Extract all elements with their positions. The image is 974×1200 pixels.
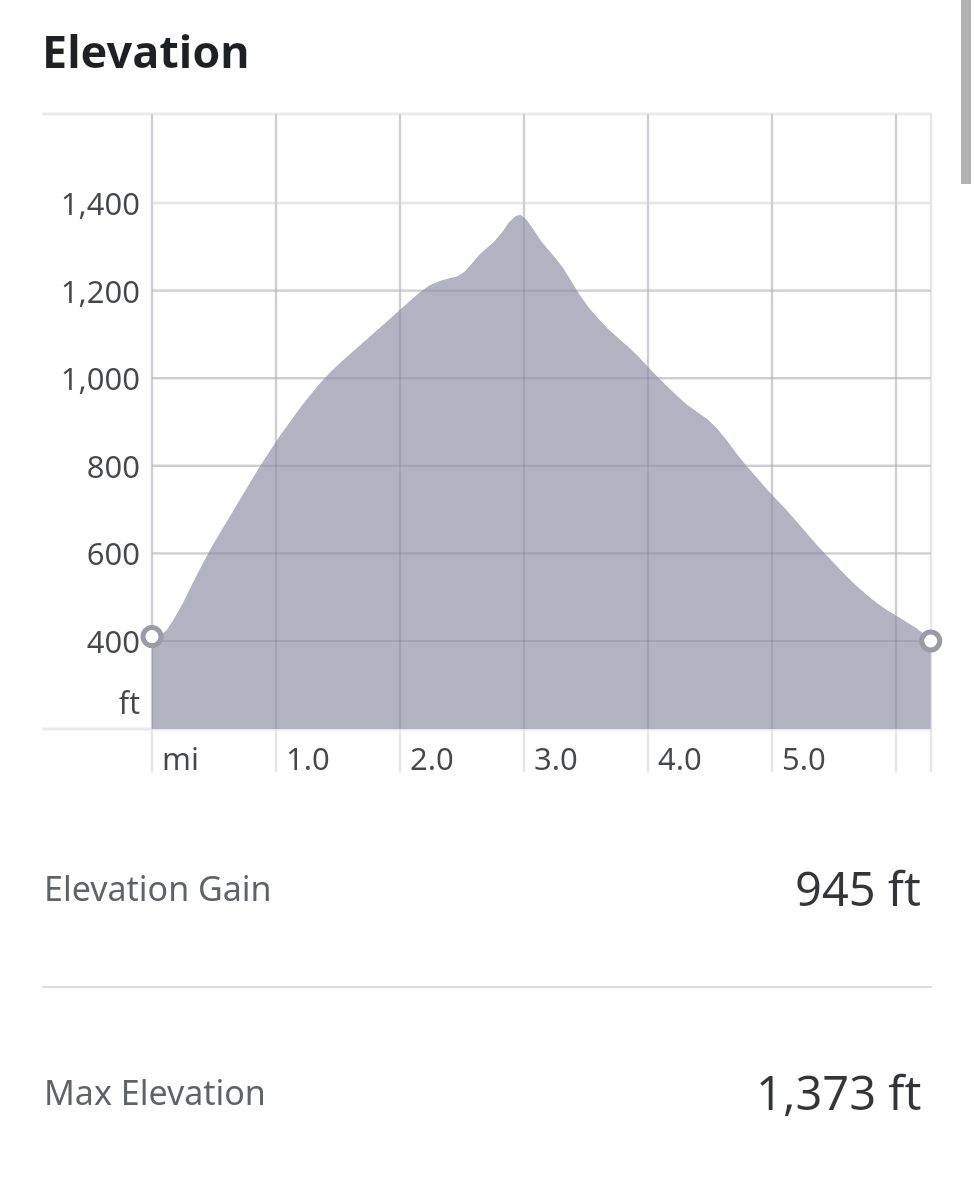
staticText: 945 ft xyxy=(795,856,922,920)
staticText: 4.0 xyxy=(658,737,702,779)
staticText: Elevation Gain xyxy=(44,865,272,911)
staticText: 400 xyxy=(0,620,140,662)
staticText: 3.0 xyxy=(534,737,578,779)
button[interactable]: Elevation Gain xyxy=(0,838,974,938)
staticText: 600 xyxy=(0,532,140,574)
staticText: Elevation xyxy=(42,20,250,81)
staticText: 2.0 xyxy=(410,737,454,779)
staticText: 1.0 xyxy=(286,737,330,779)
staticText: 1,000 xyxy=(0,357,140,399)
staticText: Max Elevation xyxy=(44,1069,266,1115)
staticText: 5.0 xyxy=(782,737,826,779)
staticText: 1,373 ft xyxy=(756,1060,922,1124)
staticText: 800 xyxy=(0,445,140,487)
staticText: ft xyxy=(0,682,140,723)
staticText: 1,200 xyxy=(0,270,140,312)
button[interactable]: Max Elevation xyxy=(0,1042,974,1142)
staticText: mi xyxy=(162,737,199,779)
staticText: 1,400 xyxy=(0,182,140,224)
